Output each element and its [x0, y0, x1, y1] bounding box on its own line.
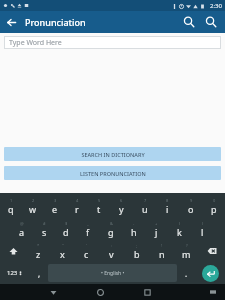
- button[interactable]: ?: [174, 240, 199, 262]
- button[interactable]: &: [99, 218, 122, 240]
- button[interactable]: ": [50, 240, 74, 262]
- button[interactable]: 6: [110, 195, 133, 218]
- staticText: r: [75, 203, 79, 215]
- button[interactable]: (: [168, 218, 191, 240]
- staticText: 2: [32, 198, 35, 203]
- button[interactable]: 2: [22, 195, 44, 218]
- button[interactable]: ': [74, 240, 99, 262]
- staticText: n: [159, 248, 165, 260]
- staticText: j: [155, 226, 158, 238]
- button[interactable]: 5: [88, 195, 110, 218]
- staticText: !: [161, 243, 163, 248]
- button[interactable]: Back: [0, 11, 22, 33]
- button[interactable]: _: [77, 218, 99, 240]
- button[interactable]: !: [149, 240, 174, 262]
- button[interactable]: 123: [0, 262, 30, 284]
- staticText: ,: [38, 268, 41, 279]
- button[interactable]: +: [145, 218, 168, 240]
- button[interactable]: -: [122, 218, 145, 240]
- staticText: 2:30: [210, 2, 222, 10]
- staticText: p: [211, 203, 217, 215]
- button[interactable]: ;: [124, 240, 149, 262]
- staticText: Pronunciation: [25, 16, 86, 28]
- button[interactable]: 3: [44, 195, 66, 218]
- button[interactable]: 4: [66, 195, 88, 218]
- button[interactable]: #: [33, 218, 55, 240]
- staticText: i: [166, 203, 169, 215]
- staticText: 0: [213, 198, 216, 203]
- button[interactable]: Back: [45, 284, 61, 300]
- staticText: #: [43, 221, 46, 226]
- staticText: +: [155, 221, 158, 226]
- staticText: a: [19, 226, 25, 238]
- staticText: 3: [54, 198, 57, 203]
- button[interactable]: Period: [177, 262, 195, 284]
- button[interactable]: Voice search: [200, 11, 222, 33]
- staticText: 7: [144, 198, 147, 203]
- button[interactable]: Search: [178, 11, 200, 33]
- staticText: ": [62, 243, 64, 248]
- staticText: d: [63, 226, 69, 238]
- staticText: 9: [190, 198, 193, 203]
- button[interactable]: 8: [156, 195, 179, 218]
- staticText: 6: [120, 198, 123, 203]
- staticText: (: [179, 221, 181, 226]
- staticText: *: [37, 243, 40, 248]
- staticText: c: [84, 248, 89, 260]
- staticText: 5: [98, 198, 101, 203]
- staticText: q: [8, 203, 14, 215]
- button[interactable]: 7: [133, 195, 156, 218]
- button[interactable]: 1: [0, 195, 22, 218]
- staticText: $: [65, 221, 68, 226]
- staticText: v: [109, 248, 114, 260]
- staticText: x: [60, 248, 65, 260]
- staticText: g: [108, 226, 114, 238]
- staticText: y: [119, 203, 124, 215]
- button[interactable]: Comma: [30, 262, 48, 284]
- staticText: LISTEN PRONUNCIATION: [80, 170, 146, 177]
- staticText: h: [131, 226, 137, 238]
- button[interactable]: ): [191, 218, 214, 240]
- staticText: k: [177, 226, 182, 238]
- button[interactable]: Recents: [139, 284, 155, 300]
- staticText: _: [87, 221, 89, 226]
- staticText: -: [133, 221, 135, 226]
- button[interactable]: Keyboard: [205, 284, 221, 300]
- button[interactable]: @: [11, 218, 33, 240]
- button[interactable]: $: [55, 218, 77, 240]
- staticText: 4: [76, 198, 79, 203]
- staticText: e: [52, 203, 58, 215]
- staticText: 1: [10, 198, 13, 203]
- button[interactable]: 9: [179, 195, 202, 218]
- button[interactable]: :: [99, 240, 124, 262]
- staticText: ;: [136, 243, 138, 248]
- staticText: t: [97, 203, 101, 215]
- staticText: l: [201, 226, 204, 238]
- staticText: .: [185, 268, 188, 279]
- staticText: &: [110, 221, 113, 226]
- button[interactable]: Type Word Here: [4, 36, 221, 49]
- staticText: 123: [7, 269, 18, 277]
- staticText: • English •: [101, 270, 125, 277]
- button[interactable]: Backspace: [199, 240, 225, 262]
- button[interactable]: Enter: [195, 262, 225, 284]
- button[interactable]: Space: [48, 264, 177, 282]
- button[interactable]: Shift: [0, 240, 26, 262]
- staticText: m: [182, 248, 191, 260]
- staticText: ?: [186, 243, 188, 248]
- staticText: o: [188, 203, 194, 215]
- staticText: s: [42, 226, 47, 238]
- button[interactable]: LISTEN PRONUNCIATION: [4, 166, 221, 180]
- button[interactable]: SEARCH IN DICTIONARY: [4, 147, 221, 161]
- button[interactable]: Home: [92, 284, 108, 300]
- staticText: :: [111, 243, 113, 248]
- staticText: f: [86, 226, 90, 238]
- button[interactable]: 0: [202, 195, 225, 218]
- staticText: z: [36, 248, 41, 260]
- staticText: ': [86, 243, 87, 248]
- staticText: w: [29, 203, 37, 215]
- staticText: u: [142, 203, 148, 215]
- staticText: @: [20, 221, 24, 226]
- staticText: b: [134, 248, 140, 260]
- button[interactable]: *: [26, 240, 50, 262]
